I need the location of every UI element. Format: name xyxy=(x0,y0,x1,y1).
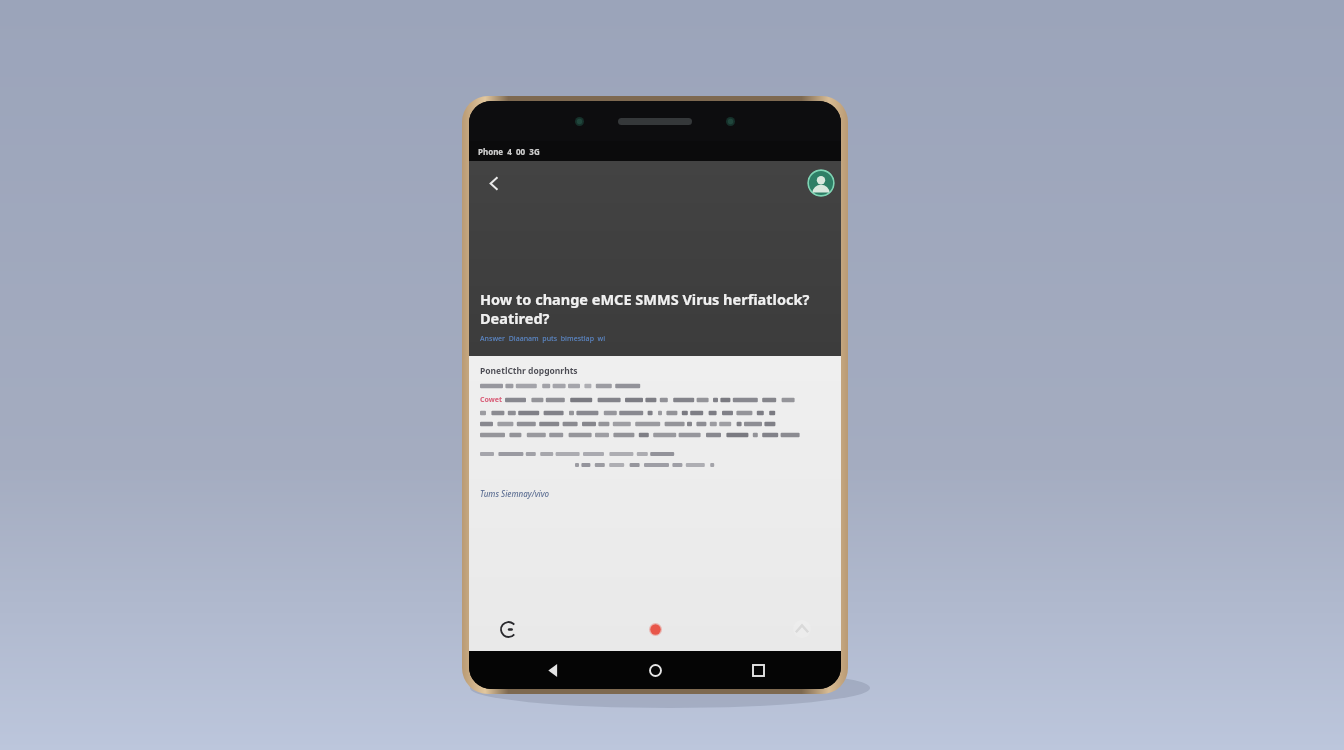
button[interactable]: Back xyxy=(534,651,572,689)
button[interactable]: Comments xyxy=(491,612,525,646)
staticText: PonetlCthr dopgonrhts xyxy=(480,365,578,377)
button[interactable]: Home xyxy=(636,651,674,689)
button[interactable]: Record xyxy=(638,612,672,646)
staticText: Answer Diaanam puts bimestlap wi xyxy=(480,334,606,344)
button[interactable]: Account xyxy=(807,169,835,197)
staticText: Phone 4 00 3G xyxy=(478,146,540,157)
button[interactable]: Share xyxy=(785,612,819,646)
button[interactable]: Answer Diaanam puts bimestlap wi xyxy=(480,334,606,344)
button[interactable]: Tums Siemnay/vivo xyxy=(480,488,550,499)
staticText: How to change eMCE SMMS Virus herfiatloc… xyxy=(480,289,810,328)
button[interactable]: Back xyxy=(475,164,513,202)
button[interactable]: Recents xyxy=(739,651,777,689)
staticText: Cowet xyxy=(480,395,502,405)
staticText: Tums Siemnay/vivo xyxy=(480,488,550,499)
